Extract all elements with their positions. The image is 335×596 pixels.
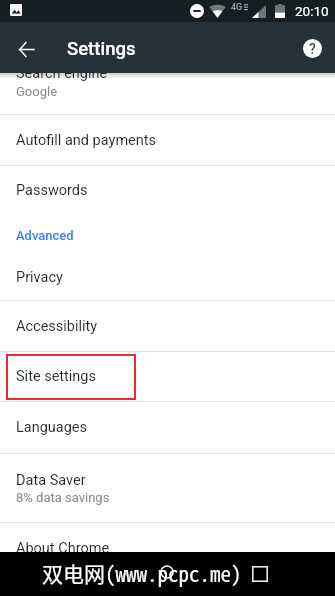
button[interactable]: About Chrome (0, 523, 335, 573)
staticText: Autofill and payments (16, 132, 157, 149)
staticText: 4G (231, 2, 243, 13)
button[interactable]: Accessibility (0, 301, 335, 351)
staticText: Accessibility (16, 318, 98, 335)
button[interactable]: Site settings (0, 352, 335, 401)
staticText: 8% data savings (16, 490, 110, 505)
staticText: Site settings (16, 368, 96, 385)
staticText: 双电网(www.pcpc.me) (42, 558, 242, 588)
button[interactable]: Autofill and payments (0, 115, 335, 165)
staticText: ? (309, 41, 316, 57)
button[interactable]: Help (297, 33, 327, 63)
staticText: Settings (67, 38, 136, 60)
staticText: Data Saver (16, 472, 86, 489)
button[interactable]: Languages (0, 402, 335, 453)
staticText: Search engine (16, 65, 108, 82)
staticText: 20:10 (295, 3, 329, 19)
button[interactable]: Privacy (0, 254, 335, 300)
button[interactable]: Data Saver (0, 454, 335, 522)
button[interactable]: Search engine (0, 60, 335, 114)
staticText: Passwords (16, 182, 88, 199)
button[interactable]: Passwords (0, 166, 335, 215)
staticText: Privacy (16, 269, 63, 286)
staticText: Google (16, 84, 58, 99)
button[interactable]: Back (11, 33, 41, 63)
staticText: Languages (16, 419, 88, 436)
staticText: About Chrome (16, 540, 110, 557)
button[interactable]: Recents (252, 566, 268, 582)
staticText: Advanced (16, 228, 74, 243)
